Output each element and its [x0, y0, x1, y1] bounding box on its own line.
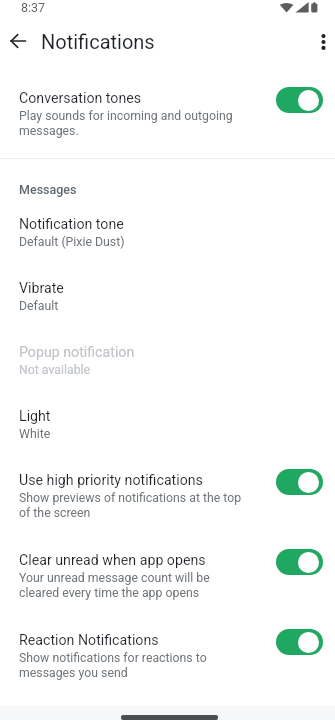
- staticText: Default (Pixie Dust): [19, 235, 125, 249]
- button[interactable]: Clear unread when app opens: [0, 537, 335, 617]
- staticText: Default: [19, 299, 59, 313]
- staticText: Show previews of notifications at the to…: [19, 491, 242, 520]
- staticText: Your unread message count will be cleare…: [19, 571, 210, 600]
- staticText: Notifications: [41, 30, 155, 53]
- staticText: 8:37: [21, 0, 46, 15]
- button[interactable]: Notification tone: [0, 201, 335, 265]
- button[interactable]: Vibrate: [0, 265, 335, 329]
- button[interactable]: Popup notification: [0, 329, 335, 393]
- button[interactable]: More options: [311, 30, 335, 54]
- button[interactable]: Toggle: [276, 87, 323, 113]
- button[interactable]: Conversation tones: [0, 62, 335, 154]
- button[interactable]: Back: [4, 27, 32, 55]
- staticText: Show notifications for reactions to mess…: [19, 651, 207, 680]
- staticText: Messages: [19, 182, 77, 197]
- staticText: Play sounds for incoming and outgoing me…: [19, 109, 233, 138]
- button[interactable]: Light: [0, 393, 335, 457]
- staticText: Clear unread when app opens: [19, 552, 206, 569]
- staticText: Vibrate: [19, 280, 64, 297]
- button[interactable]: Toggle: [276, 469, 323, 495]
- staticText: Not available: [19, 363, 91, 377]
- staticText: Use high priority notifications: [19, 472, 203, 489]
- button[interactable]: Toggle: [276, 549, 323, 575]
- staticText: Light: [19, 408, 51, 425]
- staticText: Reaction Notifications: [19, 632, 159, 649]
- staticText: White: [19, 427, 51, 441]
- staticText: Popup notification: [19, 344, 135, 361]
- staticText: Conversation tones: [19, 90, 142, 107]
- button[interactable]: Reaction Notifications: [0, 617, 335, 696]
- button[interactable]: Use high priority notifications: [0, 457, 335, 537]
- button[interactable]: Toggle: [276, 629, 323, 655]
- staticText: Notification tone: [19, 216, 124, 233]
